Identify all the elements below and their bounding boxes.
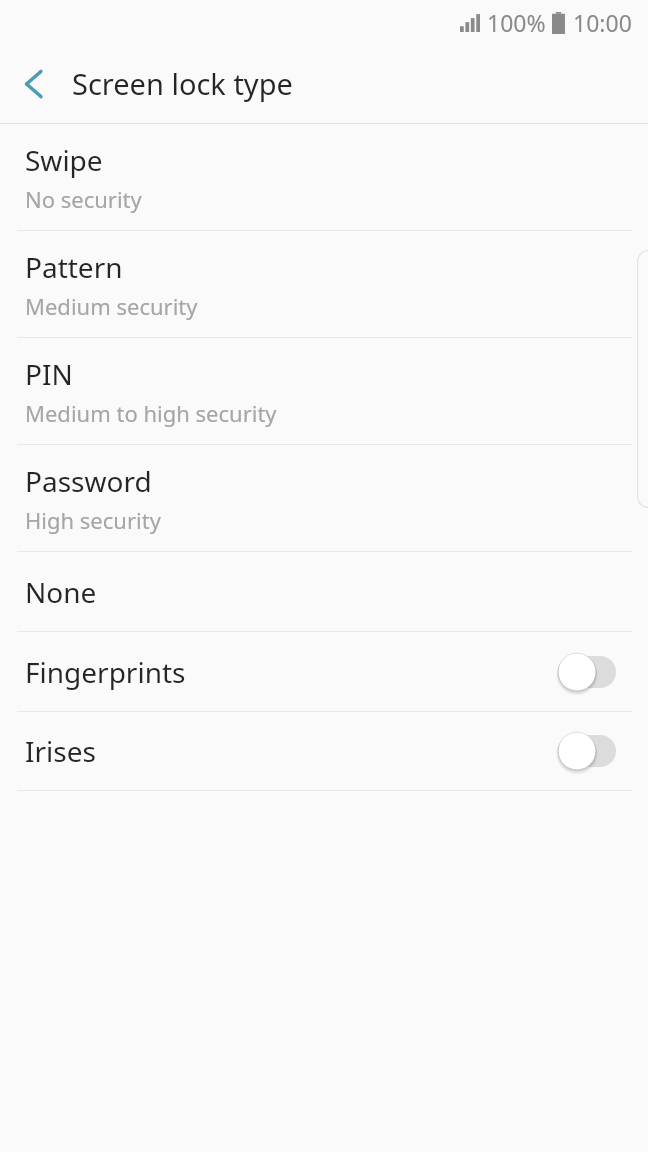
button[interactable]: Back <box>6 56 62 112</box>
button[interactable]: Irises <box>0 712 648 790</box>
staticText: None <box>25 573 97 611</box>
staticText: Medium to high security <box>25 398 277 428</box>
staticText: Irises <box>25 732 96 770</box>
button[interactable]: PIN <box>0 338 648 444</box>
staticText: Screen lock type <box>72 64 293 103</box>
staticText: Password <box>25 462 152 500</box>
staticText: No security <box>25 184 142 214</box>
staticText: 10:00 <box>573 7 632 38</box>
staticText: Medium security <box>25 291 198 321</box>
staticText: High security <box>25 505 161 535</box>
staticText: Swipe <box>25 141 103 179</box>
staticText: Pattern <box>25 248 123 286</box>
button[interactable]: Fingerprints <box>0 632 648 711</box>
button[interactable]: None <box>0 552 648 631</box>
button[interactable]: Swipe <box>0 124 648 230</box>
button[interactable]: Password <box>0 445 648 551</box>
staticText: PIN <box>25 355 73 393</box>
staticText: 100% <box>487 7 546 38</box>
button[interactable]: Pattern <box>0 231 648 337</box>
staticText: Fingerprints <box>25 653 186 691</box>
